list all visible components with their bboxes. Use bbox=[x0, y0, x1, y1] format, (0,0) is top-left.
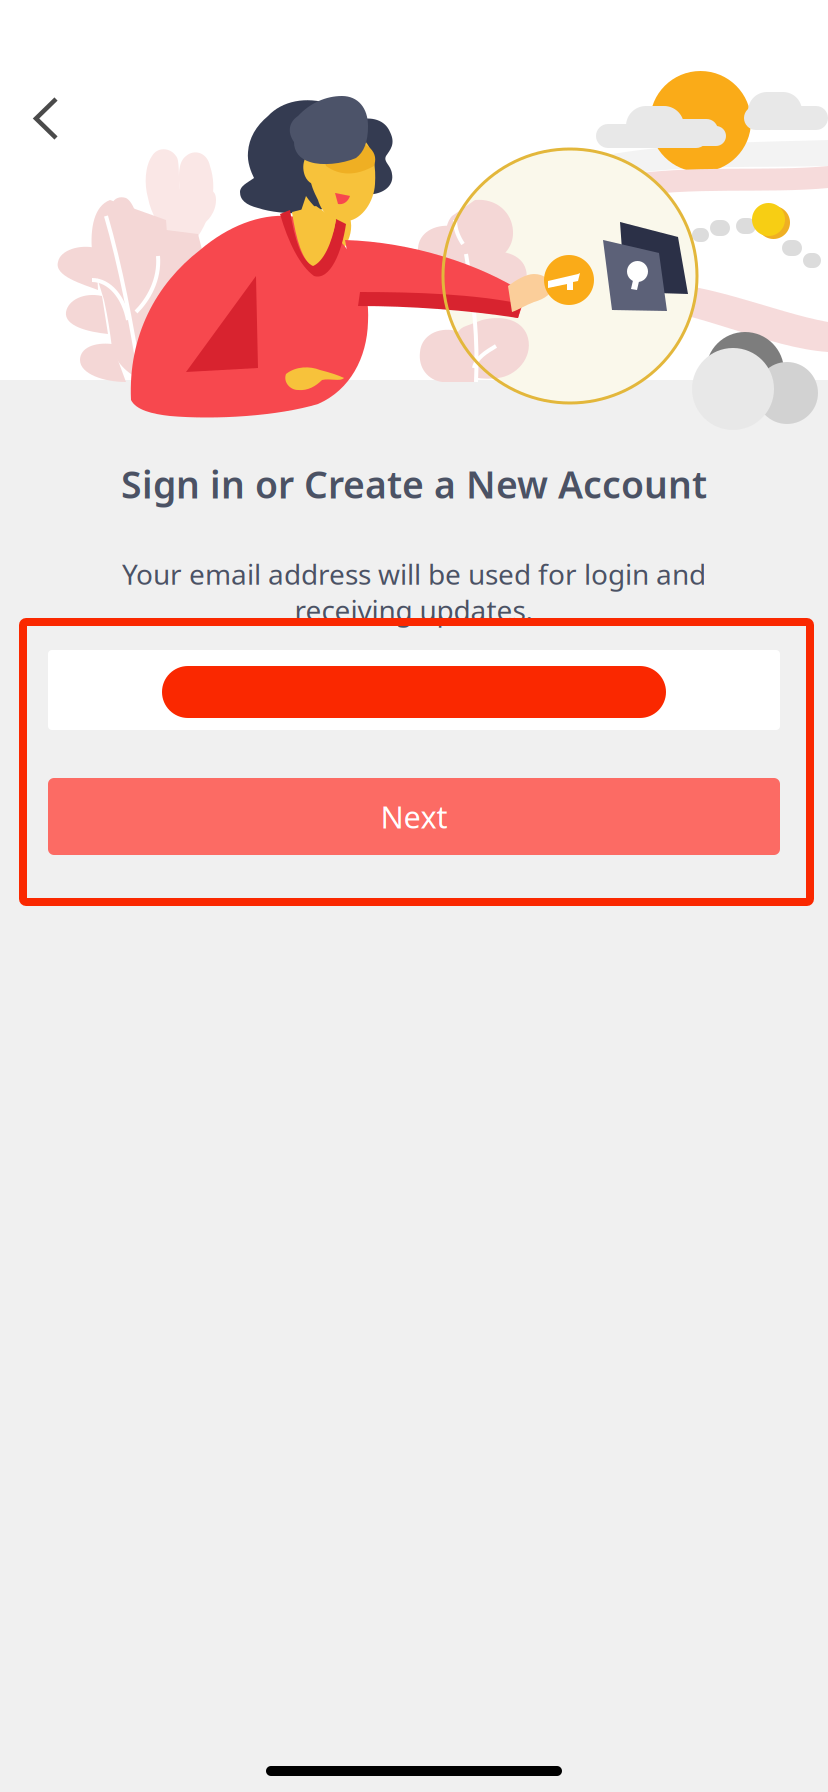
staticText: Next bbox=[380, 796, 447, 837]
staticText: receiving updates. bbox=[294, 591, 533, 629]
button[interactable]: Next bbox=[48, 778, 780, 855]
staticText: Your email address will be used for logi… bbox=[122, 555, 706, 593]
staticText: Sign in or Create a New Account bbox=[121, 459, 707, 509]
